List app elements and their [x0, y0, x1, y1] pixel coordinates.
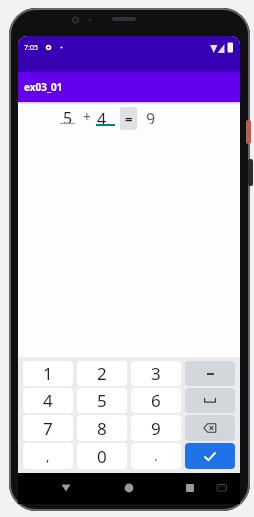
button[interactable] — [119, 478, 139, 498]
staticText: 1 — [43, 362, 53, 385]
button[interactable] — [185, 361, 235, 386]
staticText: 7 — [43, 417, 53, 440]
staticText: 5 — [63, 107, 73, 123]
button[interactable]: 1 — [23, 361, 73, 386]
button[interactable]: . — [131, 443, 181, 469]
button[interactable] — [56, 478, 76, 498]
button[interactable]: 5 — [77, 388, 127, 413]
staticText: 0 — [97, 445, 107, 468]
staticText: 6 — [151, 389, 161, 412]
button[interactable]: 4 — [23, 388, 73, 413]
button[interactable]: , — [23, 443, 73, 469]
staticText: , — [46, 447, 50, 465]
button[interactable]: 8 — [77, 415, 127, 441]
button[interactable]: = — [120, 107, 137, 130]
staticText: 5 — [97, 389, 107, 412]
staticText: . — [154, 447, 158, 465]
staticText: 7:05 — [24, 43, 38, 53]
button[interactable] — [185, 388, 235, 413]
button[interactable]: 9 — [131, 415, 181, 441]
button[interactable] — [185, 443, 235, 469]
button[interactable]: 0 — [77, 443, 127, 469]
staticText: = — [125, 110, 133, 128]
button[interactable]: 6 — [131, 388, 181, 413]
staticText: 9 — [146, 108, 156, 124]
staticText: + — [83, 108, 91, 124]
button[interactable]: 3 — [131, 361, 181, 386]
staticText: 4 — [43, 389, 53, 412]
button[interactable]: 7 — [23, 415, 73, 441]
button[interactable]: 2 — [77, 361, 127, 386]
staticText: 8 — [97, 417, 107, 440]
staticText: 4 — [97, 108, 107, 124]
staticText: 2 — [97, 362, 107, 385]
button[interactable]: 5 — [60, 107, 75, 124]
staticText: 9 — [151, 417, 161, 440]
button[interactable]: 4 — [96, 108, 115, 126]
staticText: 3 — [151, 362, 161, 385]
button[interactable] — [180, 478, 200, 498]
staticText: ex03_01 — [24, 80, 63, 94]
button[interactable] — [185, 415, 235, 441]
